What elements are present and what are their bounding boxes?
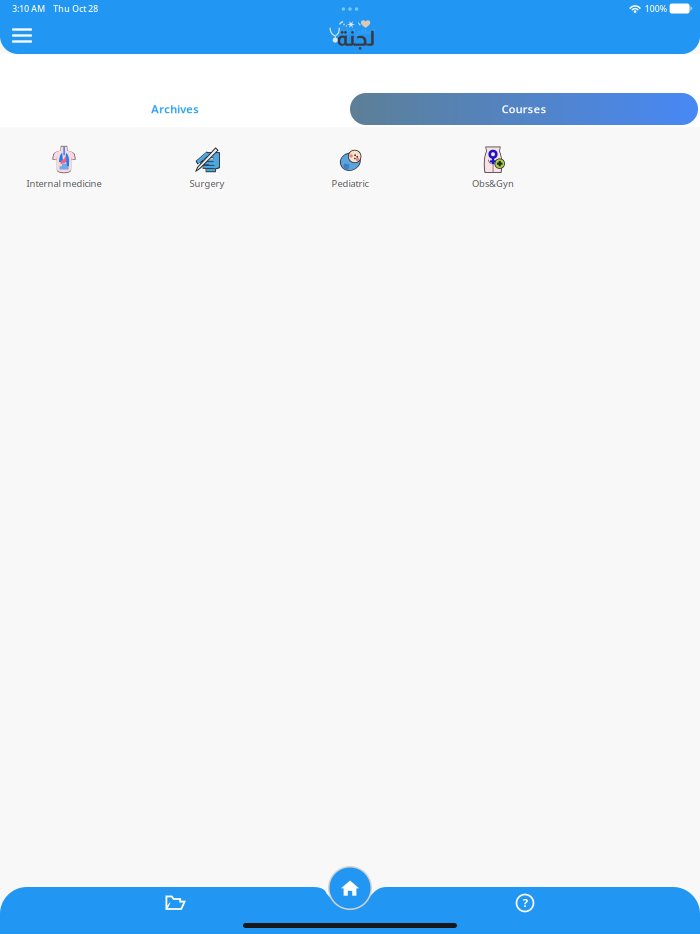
staticText: لجنة <box>336 26 375 50</box>
button[interactable]: Home <box>327 865 373 911</box>
button[interactable]: Menu <box>5 21 39 49</box>
staticText: 3:10 AM <box>12 2 45 14</box>
staticText: 100% <box>645 2 667 14</box>
button[interactable]: Archives <box>0 93 350 125</box>
button[interactable]: Archives <box>116 885 236 921</box>
staticText: Pediatric <box>331 177 368 190</box>
staticText: Surgery <box>189 177 224 190</box>
button[interactable]: Obs&Gyn <box>421 144 564 192</box>
staticText: Courses <box>501 101 546 117</box>
button[interactable]: Pediatric <box>278 144 421 192</box>
staticText: ? <box>522 895 527 910</box>
staticText: Internal medicine <box>26 177 101 190</box>
button[interactable]: Internal medicine <box>0 144 135 192</box>
button[interactable]: Surgery <box>135 144 278 192</box>
button[interactable]: Help <box>465 885 585 921</box>
staticText: Archives <box>151 101 199 117</box>
staticText: المناهج الطبية <box>338 27 374 35</box>
staticText: Thu Oct 28 <box>53 2 98 14</box>
button[interactable]: Courses <box>350 93 698 125</box>
staticText: Obs&Gyn <box>472 177 514 190</box>
